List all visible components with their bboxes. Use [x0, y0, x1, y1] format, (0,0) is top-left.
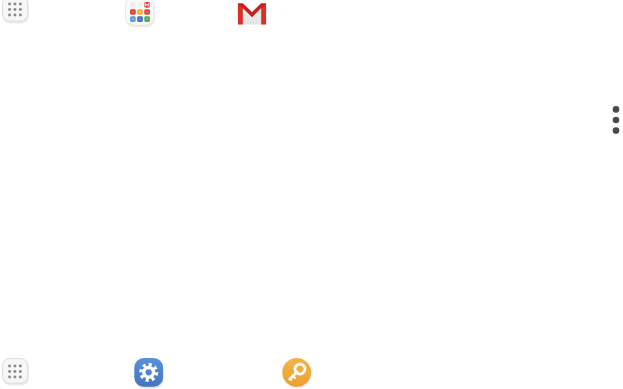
button[interactable]: Settings	[133, 357, 165, 389]
button[interactable]: Passwords	[281, 357, 313, 389]
button[interactable]: Apps	[2, 0, 29, 23]
button[interactable]: Apps	[2, 358, 29, 385]
button[interactable]: Folder	[125, 0, 155, 27]
button[interactable]: Gmail	[236, 0, 268, 29]
button[interactable]: More options	[605, 101, 623, 139]
